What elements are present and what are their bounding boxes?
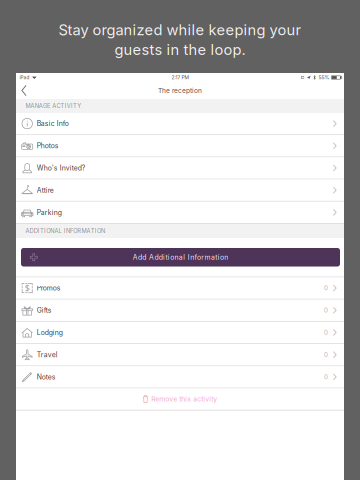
- staticText: Notes: [37, 373, 56, 381]
- staticText: 55%: [318, 74, 329, 80]
- staticText: Gifts: [37, 306, 52, 314]
- button[interactable]: Photos: [16, 135, 344, 157]
- staticText: guests in the loop.: [114, 41, 245, 58]
- staticText: 0: [324, 329, 328, 336]
- button[interactable]: Promos: [16, 277, 344, 300]
- staticText: Lodging: [37, 328, 63, 337]
- staticText: Attire: [37, 186, 54, 194]
- button[interactable]: Basic Info: [16, 113, 344, 135]
- button[interactable]: Who's Invited?: [16, 157, 344, 180]
- staticText: 0: [324, 284, 328, 292]
- button[interactable]: Back: [16, 82, 32, 99]
- staticText: Parking: [37, 208, 62, 216]
- staticText: The reception: [158, 86, 202, 94]
- button[interactable]: Travel: [16, 344, 344, 366]
- staticText: Basic Info: [37, 119, 69, 128]
- button[interactable]: Remove this activity: [16, 388, 344, 410]
- staticText: 0: [324, 373, 328, 381]
- staticText: Promos: [37, 284, 61, 292]
- button[interactable]: Attire: [16, 180, 344, 202]
- button[interactable]: Notes: [16, 366, 344, 388]
- staticText: ADDITIONAL INFORMATION: [25, 227, 105, 234]
- staticText: Travel: [37, 350, 58, 359]
- staticText: Add Additional Information: [133, 253, 228, 261]
- staticText: MANAGE ACTIVITY: [25, 102, 81, 109]
- staticText: Who's Invited?: [37, 164, 86, 172]
- staticText: Photos: [37, 142, 59, 150]
- staticText: Remove this activity: [151, 395, 217, 403]
- staticText: 0: [324, 351, 328, 358]
- button[interactable]: Gifts: [16, 300, 344, 322]
- staticText: iPad: [19, 75, 29, 80]
- button[interactable]: Lodging: [16, 322, 344, 344]
- staticText: 2:17 PM: [171, 74, 188, 80]
- button[interactable]: Add Additional Information: [21, 248, 340, 266]
- staticText: 0: [324, 307, 328, 314]
- button[interactable]: Parking: [16, 202, 344, 224]
- staticText: Stay organized while keeping your: [58, 21, 301, 39]
